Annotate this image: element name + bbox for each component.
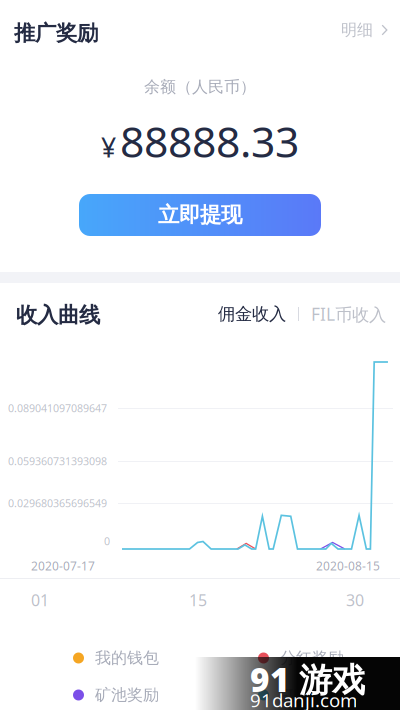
staticText: 明细 [341, 20, 373, 40]
staticText: 收入曲线 [16, 302, 100, 328]
staticText: 2020-07-17 [31, 558, 95, 574]
staticText: 01 [31, 589, 49, 611]
button[interactable]: 明细 [335, 15, 388, 45]
staticText: 矿池奖励 [95, 685, 159, 705]
button[interactable]: FIL币收入 [311, 298, 386, 329]
staticText: 我的钱包 [95, 648, 159, 668]
staticText: ¥ [101, 129, 116, 165]
staticText: FIL币收入 [311, 302, 386, 325]
staticText: 2020-08-15 [316, 558, 380, 574]
staticText: FIL币收入 [280, 684, 349, 706]
staticText: 分红奖励 [280, 648, 344, 668]
staticText: 30 [346, 589, 364, 611]
staticText: 15 [189, 589, 207, 611]
staticText: 88888.33 [120, 113, 299, 169]
staticText: 0.029680365696549 [8, 496, 107, 510]
staticText: 0.089041097089647 [8, 401, 107, 415]
staticText: 91danji.com [250, 688, 357, 710]
staticText: 余额（人民币） [144, 77, 256, 97]
staticText: 佣金收入 [218, 303, 286, 325]
button[interactable]: 立即提现 [79, 194, 321, 236]
button[interactable]: 佣金收入 [218, 299, 286, 329]
staticText: 0 [104, 534, 110, 548]
staticText: 91 游戏 [250, 657, 365, 701]
staticText: 立即提现 [158, 202, 242, 228]
staticText: 推广奖励 [14, 20, 98, 46]
staticText: 0.059360731393098 [8, 454, 107, 468]
